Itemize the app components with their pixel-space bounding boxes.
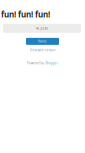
staticText: fun! fun! fun! <box>1 9 50 20</box>
button[interactable]: Blogger <box>45 61 57 65</box>
button[interactable]: fun! fun! fun! <box>0 0 50 20</box>
staticText: Powered by <box>26 61 45 65</box>
button[interactable]: View web version <box>29 48 55 52</box>
staticText: View web version <box>29 48 55 52</box>
staticText: Home <box>38 39 47 43</box>
staticText: Blogger <box>45 61 57 65</box>
staticText: No posts. <box>35 26 48 30</box>
button[interactable]: Home <box>26 38 59 45</box>
